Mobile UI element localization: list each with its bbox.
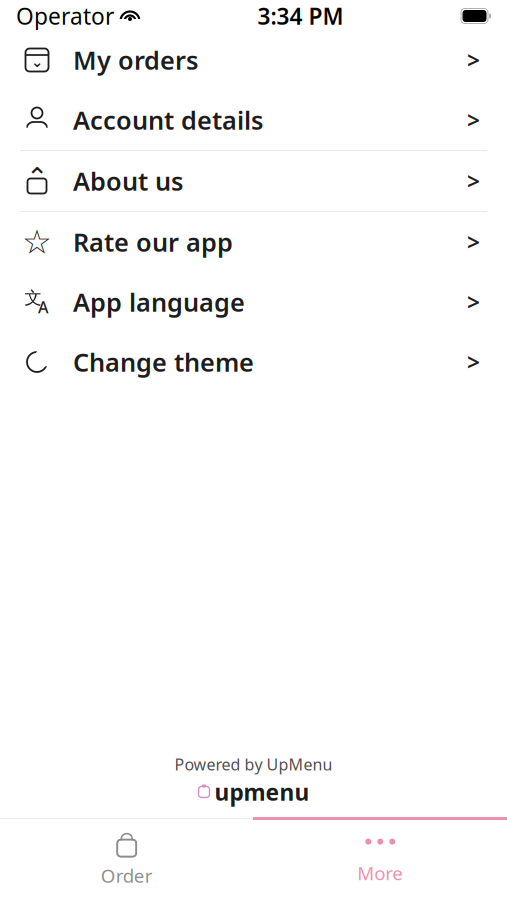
staticText: > (467, 347, 480, 377)
staticText: > (467, 45, 480, 75)
staticText: ⌄ (31, 54, 43, 70)
staticText: More (357, 861, 403, 885)
staticText: Operator (16, 1, 114, 31)
staticText: > (467, 105, 480, 135)
button[interactable]: Account details (0, 90, 507, 150)
staticText: Change theme (73, 345, 254, 379)
staticText: 3:34 PM (257, 1, 343, 31)
button[interactable]: More (253, 820, 507, 900)
staticText: ☆ (22, 223, 52, 261)
staticText: > (467, 166, 480, 196)
button[interactable]: Order (0, 820, 253, 900)
staticText: upmenu (214, 777, 309, 807)
staticText: ⌃ (26, 162, 48, 192)
staticText: Order (101, 863, 153, 888)
staticText: Account details (73, 103, 263, 137)
button[interactable]: ⌃ (0, 151, 507, 211)
staticText: About us (73, 164, 183, 198)
staticText: > (467, 227, 480, 257)
staticText: Rate our app (73, 225, 233, 259)
staticText: Powered by UpMenu (174, 754, 332, 775)
staticText: 文 (24, 287, 41, 309)
button[interactable]: 文 (0, 272, 507, 332)
staticText: My orders (73, 43, 198, 77)
staticText: > (467, 287, 480, 317)
staticText: App language (73, 285, 245, 319)
button[interactable]: ☆ (0, 212, 507, 272)
button[interactable]: Change theme (0, 332, 507, 392)
button[interactable]: ⌄ (0, 30, 507, 90)
staticText: A (38, 296, 48, 318)
